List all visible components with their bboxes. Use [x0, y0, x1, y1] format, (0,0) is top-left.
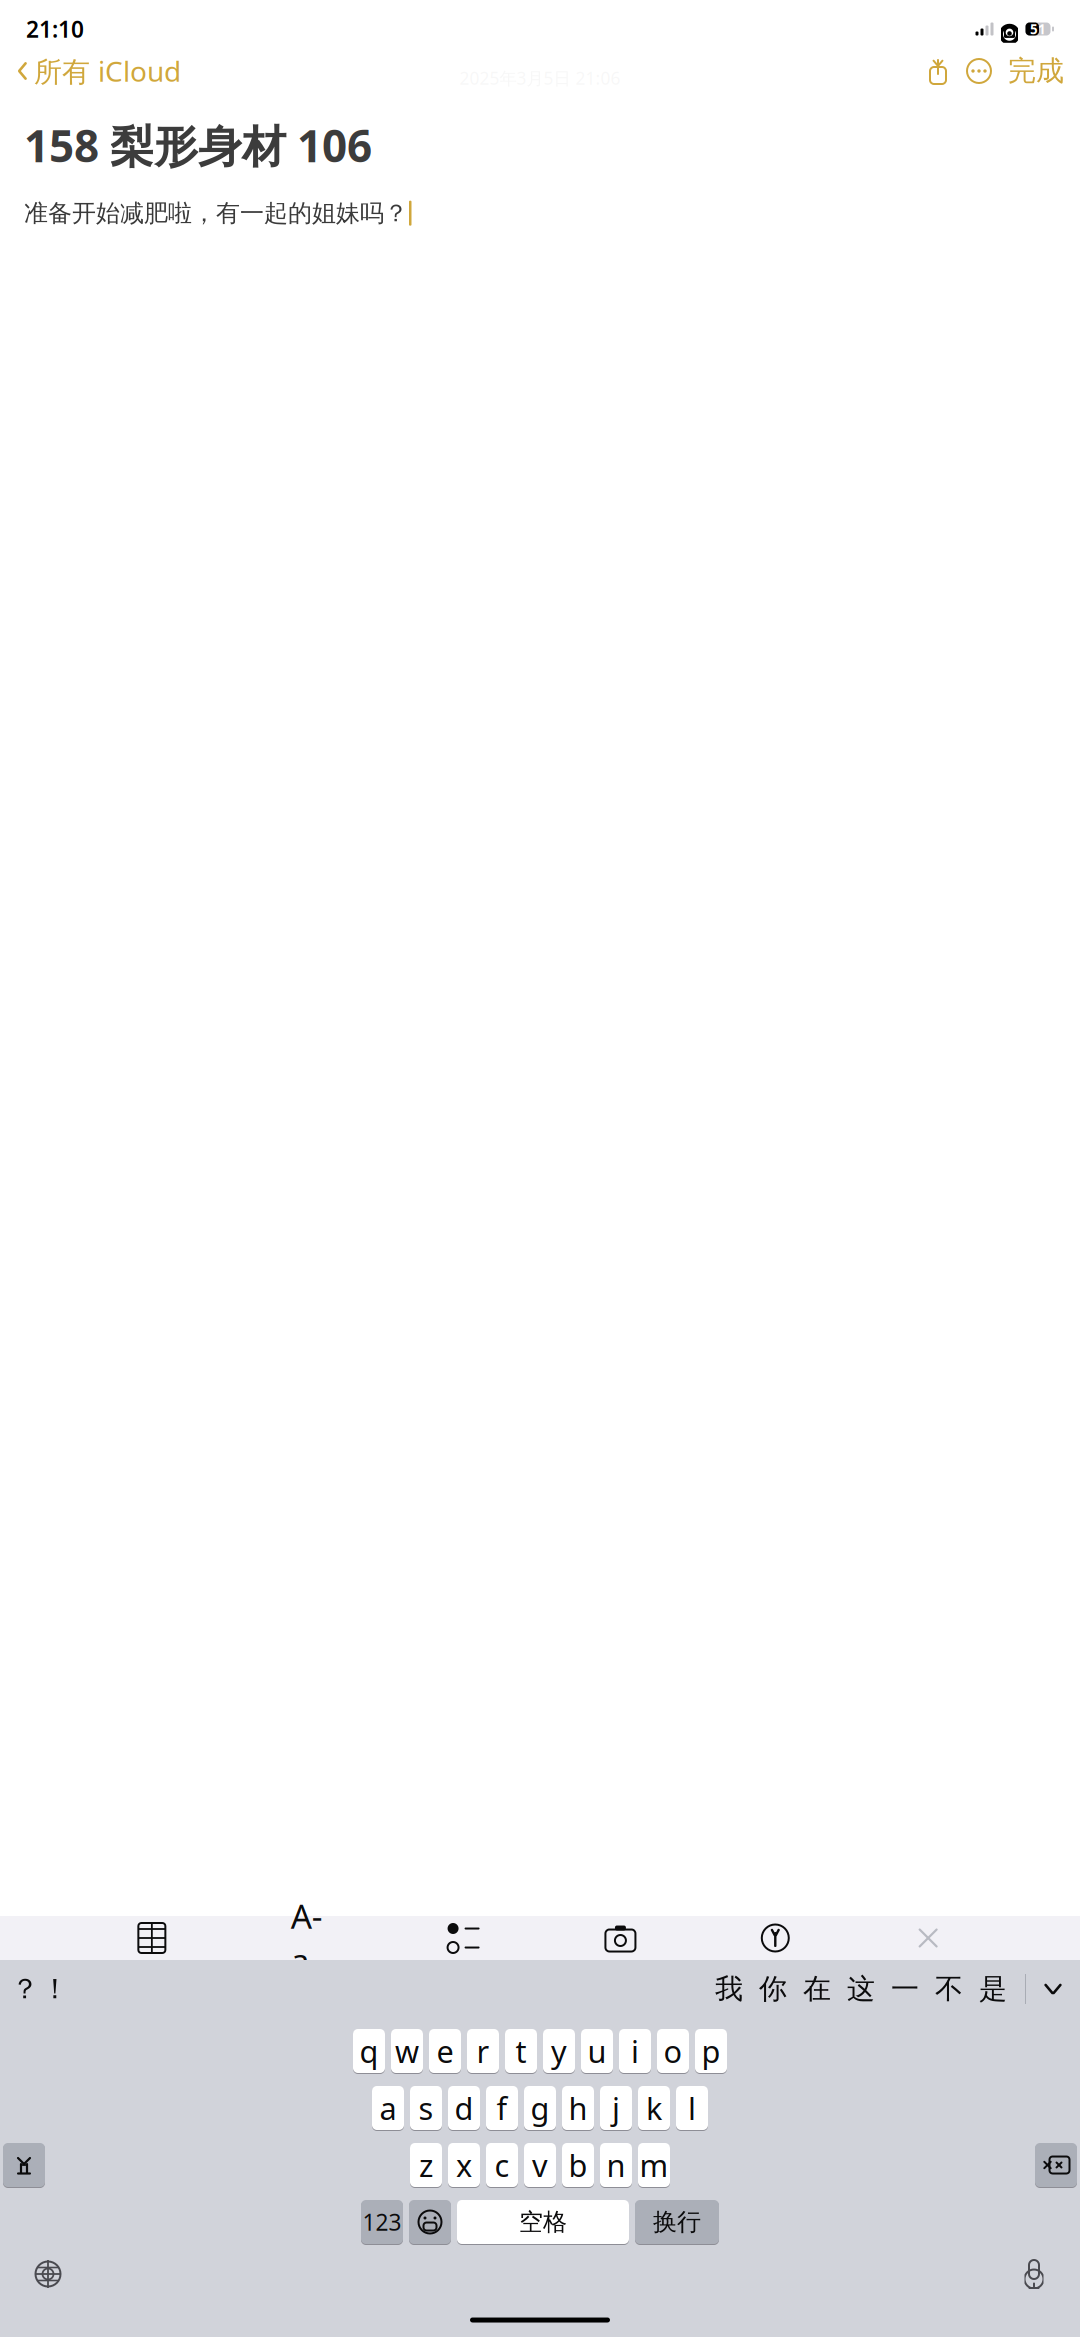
button[interactable]: y	[543, 2028, 575, 2074]
staticText: w	[395, 2031, 419, 2071]
staticText: c	[494, 2145, 509, 2185]
staticText: 不	[935, 1972, 963, 2006]
button[interactable]: f	[486, 2085, 518, 2131]
staticText: 51	[1030, 20, 1046, 38]
button[interactable]: l	[676, 2085, 708, 2131]
button[interactable]: 我	[707, 1969, 751, 2009]
button[interactable]: 是	[971, 1969, 1015, 2009]
staticText: m	[639, 2145, 668, 2185]
staticText: 158 梨形身材 106	[24, 116, 372, 174]
button[interactable]: n	[600, 2142, 632, 2188]
button[interactable]: q	[353, 2028, 385, 2074]
staticText: 准备开始减肥啦，有一起的姐妹吗？	[24, 198, 408, 228]
staticText: v	[532, 2145, 548, 2185]
button[interactable]: 在	[795, 1969, 839, 2009]
button[interactable]: s	[410, 2085, 442, 2131]
staticText: q	[359, 2031, 378, 2071]
staticText: h	[568, 2088, 587, 2128]
button[interactable]: 表情	[409, 2199, 451, 2245]
button[interactable]: 这	[839, 1969, 883, 2009]
button[interactable]: r	[467, 2028, 499, 2074]
button[interactable]: 听写	[1022, 2258, 1046, 2290]
button[interactable]: 空格	[457, 2199, 629, 2245]
button[interactable]: 核对清单	[447, 1922, 481, 1954]
button[interactable]: ？	[10, 1969, 40, 2009]
button[interactable]: h	[562, 2085, 594, 2131]
staticText: s	[418, 2088, 433, 2128]
staticText: p	[701, 2031, 720, 2071]
button[interactable]: 不	[927, 1969, 971, 2009]
button[interactable]: 换行	[635, 2199, 719, 2245]
button[interactable]: x	[448, 2142, 480, 2188]
button[interactable]: z	[410, 2142, 442, 2188]
staticText: 这	[847, 1972, 875, 2006]
button[interactable]: j	[600, 2085, 632, 2131]
button[interactable]: m	[638, 2142, 670, 2188]
staticText: 换行	[653, 2207, 701, 2237]
button[interactable]: 一	[883, 1969, 927, 2009]
staticText: l	[688, 2088, 696, 2128]
button[interactable]: u	[581, 2028, 613, 2074]
button[interactable]: 删除	[1035, 2142, 1077, 2188]
staticText: Aa	[291, 1894, 323, 1982]
staticText: 完成	[1008, 54, 1064, 88]
staticText: x	[456, 2145, 472, 2185]
button[interactable]: p	[695, 2028, 727, 2074]
button[interactable]: i	[619, 2028, 651, 2074]
button[interactable]: 完成	[1008, 48, 1064, 94]
staticText: r	[476, 2031, 489, 2071]
button[interactable]: Shift	[3, 2142, 45, 2188]
button[interactable]: a	[372, 2085, 404, 2131]
button[interactable]: 切换键盘	[34, 2259, 62, 2289]
staticText: ！	[41, 1972, 69, 2006]
button[interactable]: 标记	[760, 1922, 790, 1954]
staticText: d	[454, 2088, 473, 2128]
staticText: ？	[11, 1972, 39, 2006]
button[interactable]: o	[657, 2028, 689, 2074]
staticText: 你	[759, 1972, 787, 2006]
button[interactable]: d	[448, 2085, 480, 2131]
button[interactable]: v	[524, 2142, 556, 2188]
button[interactable]: 所有 iCloud	[16, 46, 181, 96]
staticText: f	[496, 2088, 507, 2128]
staticText: i	[631, 2031, 639, 2071]
staticText: 在	[803, 1972, 831, 2006]
staticText: 是	[979, 1972, 1007, 2006]
button[interactable]: c	[486, 2142, 518, 2188]
button[interactable]: 格式	[290, 1922, 324, 1954]
button[interactable]: w	[391, 2028, 423, 2074]
staticText: g	[530, 2088, 549, 2128]
staticText: e	[436, 2031, 453, 2071]
staticText: 21:10	[26, 14, 84, 44]
staticText: y	[551, 2031, 567, 2071]
button[interactable]: 收起候选	[1036, 1972, 1070, 2006]
button[interactable]: g	[524, 2085, 556, 2131]
button[interactable]: 关闭	[913, 1922, 943, 1954]
staticText: 一	[891, 1972, 919, 2006]
staticText: z	[419, 2145, 433, 2185]
button[interactable]: 更多	[950, 58, 1008, 84]
button[interactable]: 123	[361, 2199, 403, 2245]
button[interactable]: 分享	[926, 57, 950, 85]
staticText: n	[606, 2145, 625, 2185]
button[interactable]: 表格	[137, 1922, 167, 1954]
staticText: 所有 iCloud	[34, 52, 181, 90]
staticText: 我	[715, 1972, 743, 2006]
button[interactable]: k	[638, 2085, 670, 2131]
button[interactable]: t	[505, 2028, 537, 2074]
staticText: o	[663, 2031, 682, 2071]
staticText: b	[568, 2145, 587, 2185]
staticText: a	[379, 2088, 396, 2128]
staticText: j	[612, 2088, 620, 2128]
staticText: 123	[362, 2207, 401, 2237]
button[interactable]: e	[429, 2028, 461, 2074]
staticText: u	[587, 2031, 606, 2071]
button[interactable]: ！	[40, 1969, 70, 2009]
staticText: k	[646, 2088, 662, 2128]
staticText: 空格	[519, 2207, 567, 2237]
button[interactable]: b	[562, 2142, 594, 2188]
button[interactable]: 你	[751, 1969, 795, 2009]
staticText: t	[515, 2031, 526, 2071]
button[interactable]: 相机	[603, 1922, 637, 1954]
